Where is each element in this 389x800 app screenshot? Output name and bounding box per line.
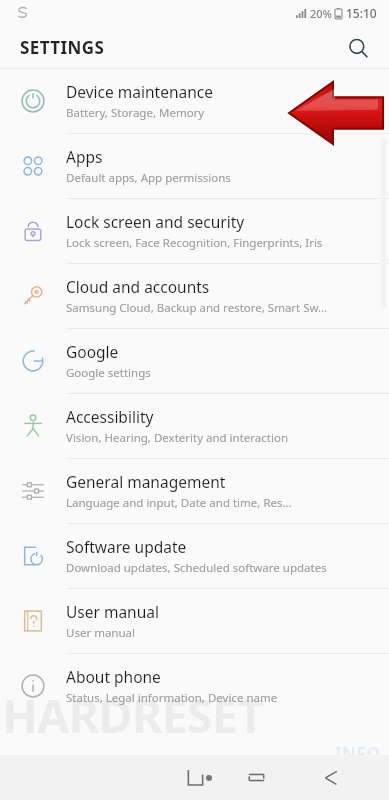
button[interactable]: About phone — [0, 654, 389, 718]
staticText: 20% — [310, 6, 332, 21]
staticText: Cloud and accounts — [66, 276, 210, 297]
button[interactable]: Software update — [0, 524, 389, 588]
button[interactable]: Apps — [0, 134, 389, 198]
staticText: Samsung Cloud, Backup and restore, Smart… — [66, 300, 328, 316]
staticText: Language and input, Date and time, Res… — [66, 495, 292, 511]
staticText: User manual — [66, 625, 135, 641]
staticText: HARDRESET — [2, 683, 264, 747]
staticText: Lock screen and security — [66, 211, 245, 232]
staticText: SETTINGS — [20, 36, 105, 59]
staticText: About phone — [66, 666, 161, 687]
button[interactable]: Back — [303, 755, 359, 800]
button[interactable]: Device maintenance — [0, 69, 389, 133]
staticText: Software update — [66, 536, 187, 557]
staticText: Download updates, Scheduled software upd… — [66, 560, 327, 576]
button[interactable]: Home — [165, 755, 225, 800]
button[interactable]: Lock screen and security — [0, 199, 389, 263]
staticText: Vision, Hearing, Dexterity and interacti… — [66, 430, 289, 446]
staticText: Google — [66, 341, 119, 362]
button[interactable]: User manual — [0, 589, 389, 653]
button[interactable]: Indicator — [14, 755, 389, 800]
staticText: INFO — [335, 742, 381, 765]
button[interactable]: General management — [0, 459, 389, 523]
staticText: Default apps, App permissions — [66, 170, 231, 186]
staticText: General management — [66, 471, 226, 492]
staticText: Accessibility — [66, 406, 154, 427]
staticText: Device maintenance — [66, 81, 213, 102]
staticText: Apps — [66, 146, 103, 167]
staticText: Lock screen, Face Recognition, Fingerpri… — [66, 235, 323, 251]
staticText: User manual — [66, 601, 159, 622]
staticText: 15:10 — [346, 5, 377, 21]
staticText: Battery, Storage, Memory — [66, 105, 205, 121]
button[interactable]: Cloud and accounts — [0, 264, 389, 328]
button[interactable]: Search — [339, 29, 377, 67]
button[interactable]: Recents — [62, 755, 389, 800]
button[interactable]: Accessibility — [0, 394, 389, 458]
button[interactable]: Google — [0, 329, 389, 393]
staticText: Google settings — [66, 365, 151, 381]
staticText: Status, Legal information, Device name — [66, 690, 278, 706]
